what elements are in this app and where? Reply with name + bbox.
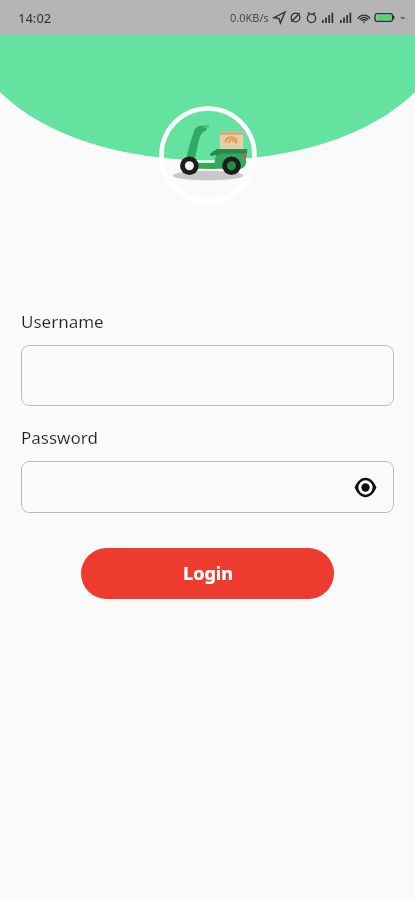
staticText: ⌁ [400,12,407,24]
staticText: Username [21,310,104,333]
button[interactable] [21,345,394,406]
staticText: Password [21,426,98,449]
button[interactable]: Show password [350,472,380,502]
button[interactable]: Login [81,548,334,599]
staticText: Login [183,561,233,586]
staticText: 14:02 [18,9,52,27]
staticText: 0.0KB/s [230,10,269,25]
button[interactable]: Show password [21,461,394,513]
